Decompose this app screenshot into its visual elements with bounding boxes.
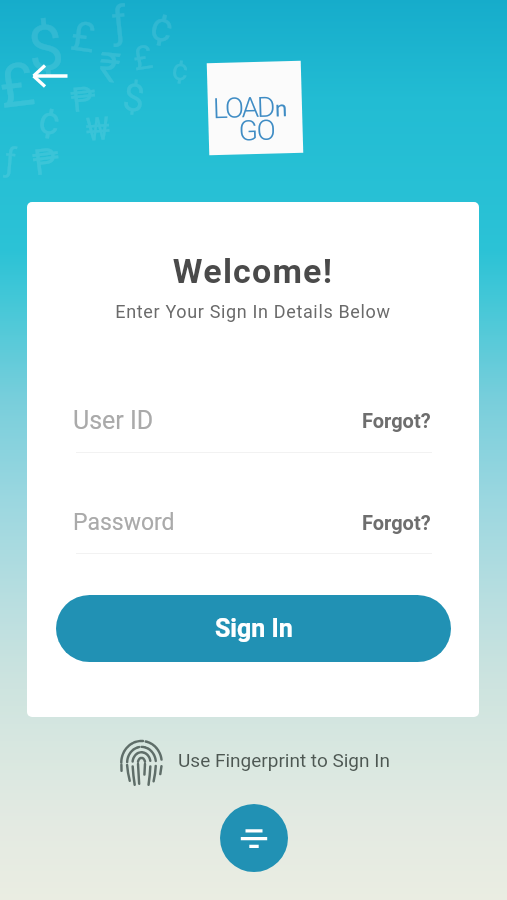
staticText: $ bbox=[120, 75, 148, 122]
staticText: User ID bbox=[73, 406, 154, 435]
staticText: ₹ bbox=[97, 43, 123, 93]
staticText: Welcome! bbox=[27, 251, 479, 291]
staticText: £ bbox=[130, 37, 156, 78]
staticText: ¢ bbox=[146, 1, 179, 53]
button[interactable]: Back bbox=[22, 53, 68, 99]
staticText: Sign In bbox=[215, 614, 293, 643]
button[interactable]: Forgot? bbox=[360, 508, 433, 537]
staticText: $ bbox=[24, 10, 68, 88]
staticText: £ bbox=[0, 48, 38, 122]
button[interactable]: Use Fingerprint to Sign In bbox=[118, 736, 390, 792]
staticText: ƒ bbox=[109, 0, 130, 49]
staticText: GO bbox=[238, 113, 276, 147]
button[interactable]: Forgot? bbox=[360, 406, 433, 435]
staticText: ₩ bbox=[85, 109, 111, 149]
staticText: LOAD bbox=[212, 90, 274, 125]
staticText: n bbox=[275, 96, 288, 122]
staticText: ₱ bbox=[30, 139, 62, 184]
staticText: ¢ bbox=[170, 51, 191, 88]
staticText: Forgot? bbox=[362, 409, 431, 432]
staticText: ¢ bbox=[35, 97, 64, 145]
staticText: Password bbox=[73, 509, 175, 536]
button[interactable]: Menu bbox=[220, 804, 288, 872]
staticText: Enter Your Sign In Details Below bbox=[27, 301, 479, 322]
staticText: ƒ bbox=[3, 140, 19, 179]
staticText: ₱ bbox=[69, 78, 98, 120]
staticText: £ bbox=[68, 12, 98, 62]
staticText: Use Fingerprint to Sign In bbox=[178, 749, 390, 771]
button[interactable]: Sign In bbox=[56, 595, 451, 662]
staticText: Forgot? bbox=[362, 511, 431, 534]
